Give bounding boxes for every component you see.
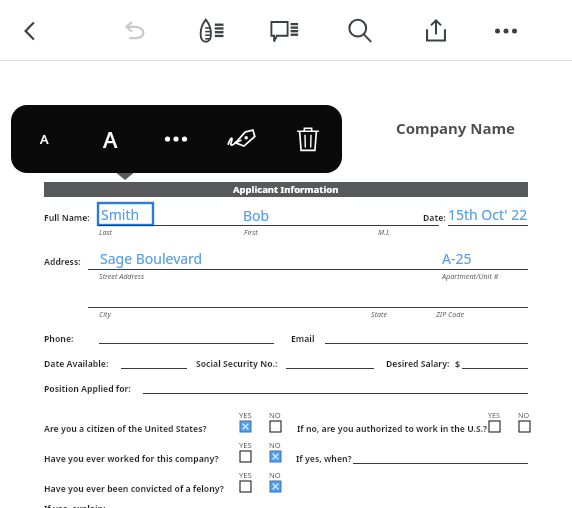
staticText: Smith xyxy=(101,205,140,224)
button[interactable] xyxy=(240,421,251,432)
button[interactable]: More options xyxy=(482,0,530,61)
staticText: Address: xyxy=(44,256,81,268)
staticText: M.I. xyxy=(378,227,391,237)
staticText: YES xyxy=(239,470,252,480)
staticText: Sage Boulevard xyxy=(100,249,203,268)
staticText: YES xyxy=(239,440,252,450)
staticText: Applicant Information xyxy=(233,183,339,196)
button[interactable]: Search xyxy=(336,0,384,61)
button[interactable]: Highlight xyxy=(186,0,234,61)
staticText: Email xyxy=(291,333,315,345)
staticText: If yes, when? xyxy=(296,453,352,465)
button[interactable] xyxy=(240,451,251,462)
staticText: Apartment/Unit # xyxy=(442,271,499,281)
staticText: A xyxy=(40,130,49,148)
staticText: If yes, explain: xyxy=(44,503,106,508)
staticText: If no, are you authorized to work in the… xyxy=(297,423,488,435)
staticText: Are you a citizen of the United States? xyxy=(44,423,207,435)
staticText: Have you ever worked for this company? xyxy=(44,453,219,465)
button[interactable] xyxy=(489,421,500,432)
staticText: Street Address xyxy=(99,271,145,281)
staticText: Position Applied for: xyxy=(44,383,131,395)
staticText: State xyxy=(371,309,388,319)
staticText: Last xyxy=(99,227,113,237)
button[interactable] xyxy=(270,421,281,432)
button[interactable]: Smith xyxy=(98,203,153,225)
staticText: Bob xyxy=(243,206,270,225)
staticText: NO xyxy=(269,440,281,450)
button[interactable] xyxy=(270,451,281,462)
staticText: NO xyxy=(269,410,281,420)
staticText: A-25 xyxy=(442,249,472,268)
button[interactable]: Increase text size xyxy=(77,105,143,173)
staticText: Date: xyxy=(423,212,446,224)
staticText: Social Security No.: xyxy=(196,358,278,370)
button[interactable]: Undo xyxy=(112,0,160,61)
staticText: YES xyxy=(488,410,501,420)
staticText: Date Available: xyxy=(44,358,109,370)
staticText: Full Name: xyxy=(44,212,90,224)
staticText: $ xyxy=(455,358,461,370)
staticText: Have you ever been convicted of a felony… xyxy=(44,483,224,495)
staticText: First xyxy=(244,227,258,237)
button[interactable]: Back xyxy=(0,0,60,61)
staticText: NO xyxy=(518,410,530,420)
staticText: YES xyxy=(239,410,252,420)
staticText: ZIP Code xyxy=(436,309,465,319)
staticText: Company Name xyxy=(396,118,516,138)
button[interactable] xyxy=(270,481,281,492)
button[interactable]: Delete xyxy=(275,105,341,173)
staticText: 15th Oct' 22 xyxy=(448,205,528,224)
staticText: City xyxy=(99,309,111,319)
button[interactable]: Signature xyxy=(209,105,275,173)
staticText: Desired Salary: xyxy=(386,358,450,370)
staticText: NO xyxy=(269,470,281,480)
button[interactable]: More formatting options xyxy=(143,105,209,173)
button[interactable]: Decrease text size xyxy=(11,105,77,173)
button[interactable]: Comment xyxy=(260,0,308,61)
button[interactable] xyxy=(519,421,530,432)
button[interactable] xyxy=(240,481,251,492)
staticText: A xyxy=(103,124,118,154)
button[interactable]: Share xyxy=(412,0,460,61)
staticText: Phone: xyxy=(44,333,74,345)
